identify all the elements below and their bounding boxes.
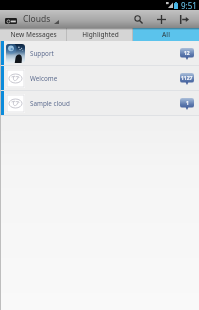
staticText: Sample cloud [30,99,70,108]
staticText: 12 [184,50,190,57]
button[interactable]: Sample cloud [0,91,199,116]
button[interactable]: Sign out [173,10,196,28]
staticText: Welcome [30,74,58,83]
button[interactable]: Clouds [5,10,59,28]
button[interactable]: Support [0,41,199,66]
staticText: 9:51 [181,0,197,10]
button[interactable]: All [133,28,199,41]
staticText: Highlighted [82,30,119,39]
staticText: Clouds [23,13,51,25]
staticText: Support [30,49,54,58]
staticText: All [162,30,170,39]
button[interactable]: Welcome [0,66,199,91]
staticText: 1127 [181,75,193,82]
button[interactable]: Search [127,10,150,28]
button[interactable]: Add [150,10,173,28]
button[interactable]: Highlighted [67,28,133,41]
staticText: 1 [186,100,189,107]
staticText: New Messages [10,30,57,39]
button[interactable]: New Messages [0,28,67,41]
